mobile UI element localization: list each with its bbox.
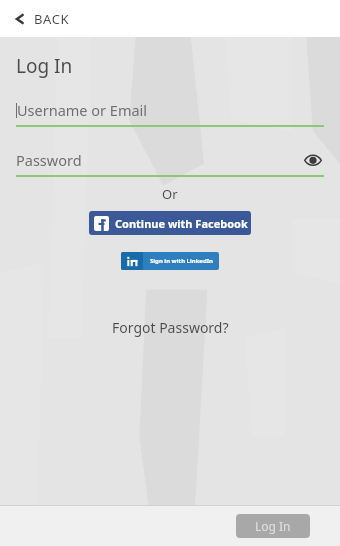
- button[interactable]: BACK: [10, 4, 74, 34]
- staticText: Continue with Facebook: [115, 216, 248, 231]
- staticText: Forgot Password?: [112, 318, 229, 337]
- button[interactable]: Log In: [236, 514, 310, 538]
- staticText: Sign in with LinkedIn: [150, 257, 213, 265]
- staticText: BACK: [34, 10, 70, 28]
- button[interactable]: Show password: [302, 149, 324, 171]
- staticText: Password: [16, 150, 82, 170]
- button[interactable]: Forgot Password?: [104, 314, 237, 341]
- staticText: Username or Email: [17, 100, 148, 120]
- button[interactable]: Username or Email: [16, 95, 324, 125]
- button[interactable]: Continue with Facebook: [89, 211, 251, 235]
- button[interactable]: Sign in with LinkedIn: [121, 252, 219, 270]
- staticText: Or: [162, 185, 178, 203]
- staticText: Log In: [255, 518, 291, 534]
- staticText: Log In: [16, 53, 73, 79]
